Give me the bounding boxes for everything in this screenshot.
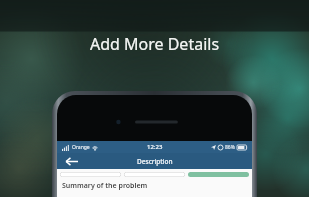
button[interactable] (124, 172, 185, 177)
staticText: Description (137, 157, 173, 166)
staticText: 86% (225, 144, 235, 151)
button[interactable] (188, 172, 249, 177)
staticText: Add More Details (0, 33, 309, 55)
staticText: Summary of the problem (62, 181, 148, 191)
button[interactable]: Back (61, 154, 81, 168)
button[interactable] (60, 172, 121, 177)
staticText: 12:23 (147, 143, 163, 151)
staticText: Orange (72, 144, 90, 151)
